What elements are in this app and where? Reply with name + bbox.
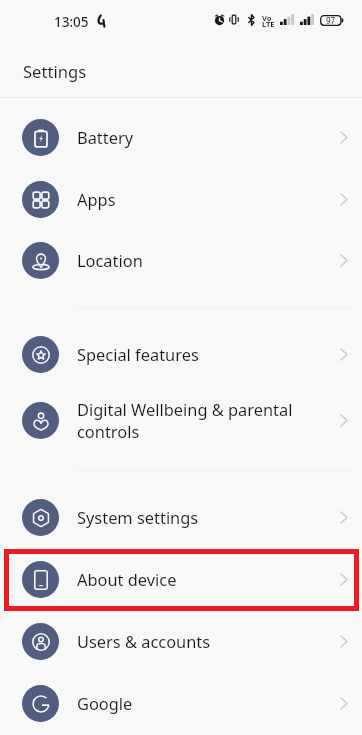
staticText: LTE [262, 19, 275, 29]
staticText: Special features [77, 343, 297, 365]
staticText: Digital Wellbeing & parental controls [77, 398, 297, 443]
staticText: Users & accounts [77, 630, 297, 652]
staticText: Battery [77, 126, 297, 148]
button[interactable]: Users & accounts [0, 610, 362, 672]
button[interactable]: Apps [0, 168, 362, 230]
staticText: Google [77, 692, 297, 714]
staticText: Vo [262, 13, 272, 23]
button[interactable]: Digital Wellbeing & parental controls [0, 385, 362, 455]
staticText: Location [77, 249, 297, 271]
staticText: 13:05 [54, 13, 89, 31]
staticText: Settings [23, 60, 87, 83]
staticText: 97 [326, 15, 336, 26]
button[interactable]: Location [0, 229, 362, 291]
button[interactable]: Special features [0, 323, 362, 385]
button[interactable]: System settings [0, 486, 362, 548]
button[interactable]: Battery [0, 106, 362, 168]
staticText: System settings [77, 506, 297, 528]
staticText: About device [77, 568, 297, 590]
button[interactable]: About device [0, 548, 362, 610]
button[interactable]: Google [0, 672, 362, 734]
staticText: Apps [77, 188, 297, 210]
